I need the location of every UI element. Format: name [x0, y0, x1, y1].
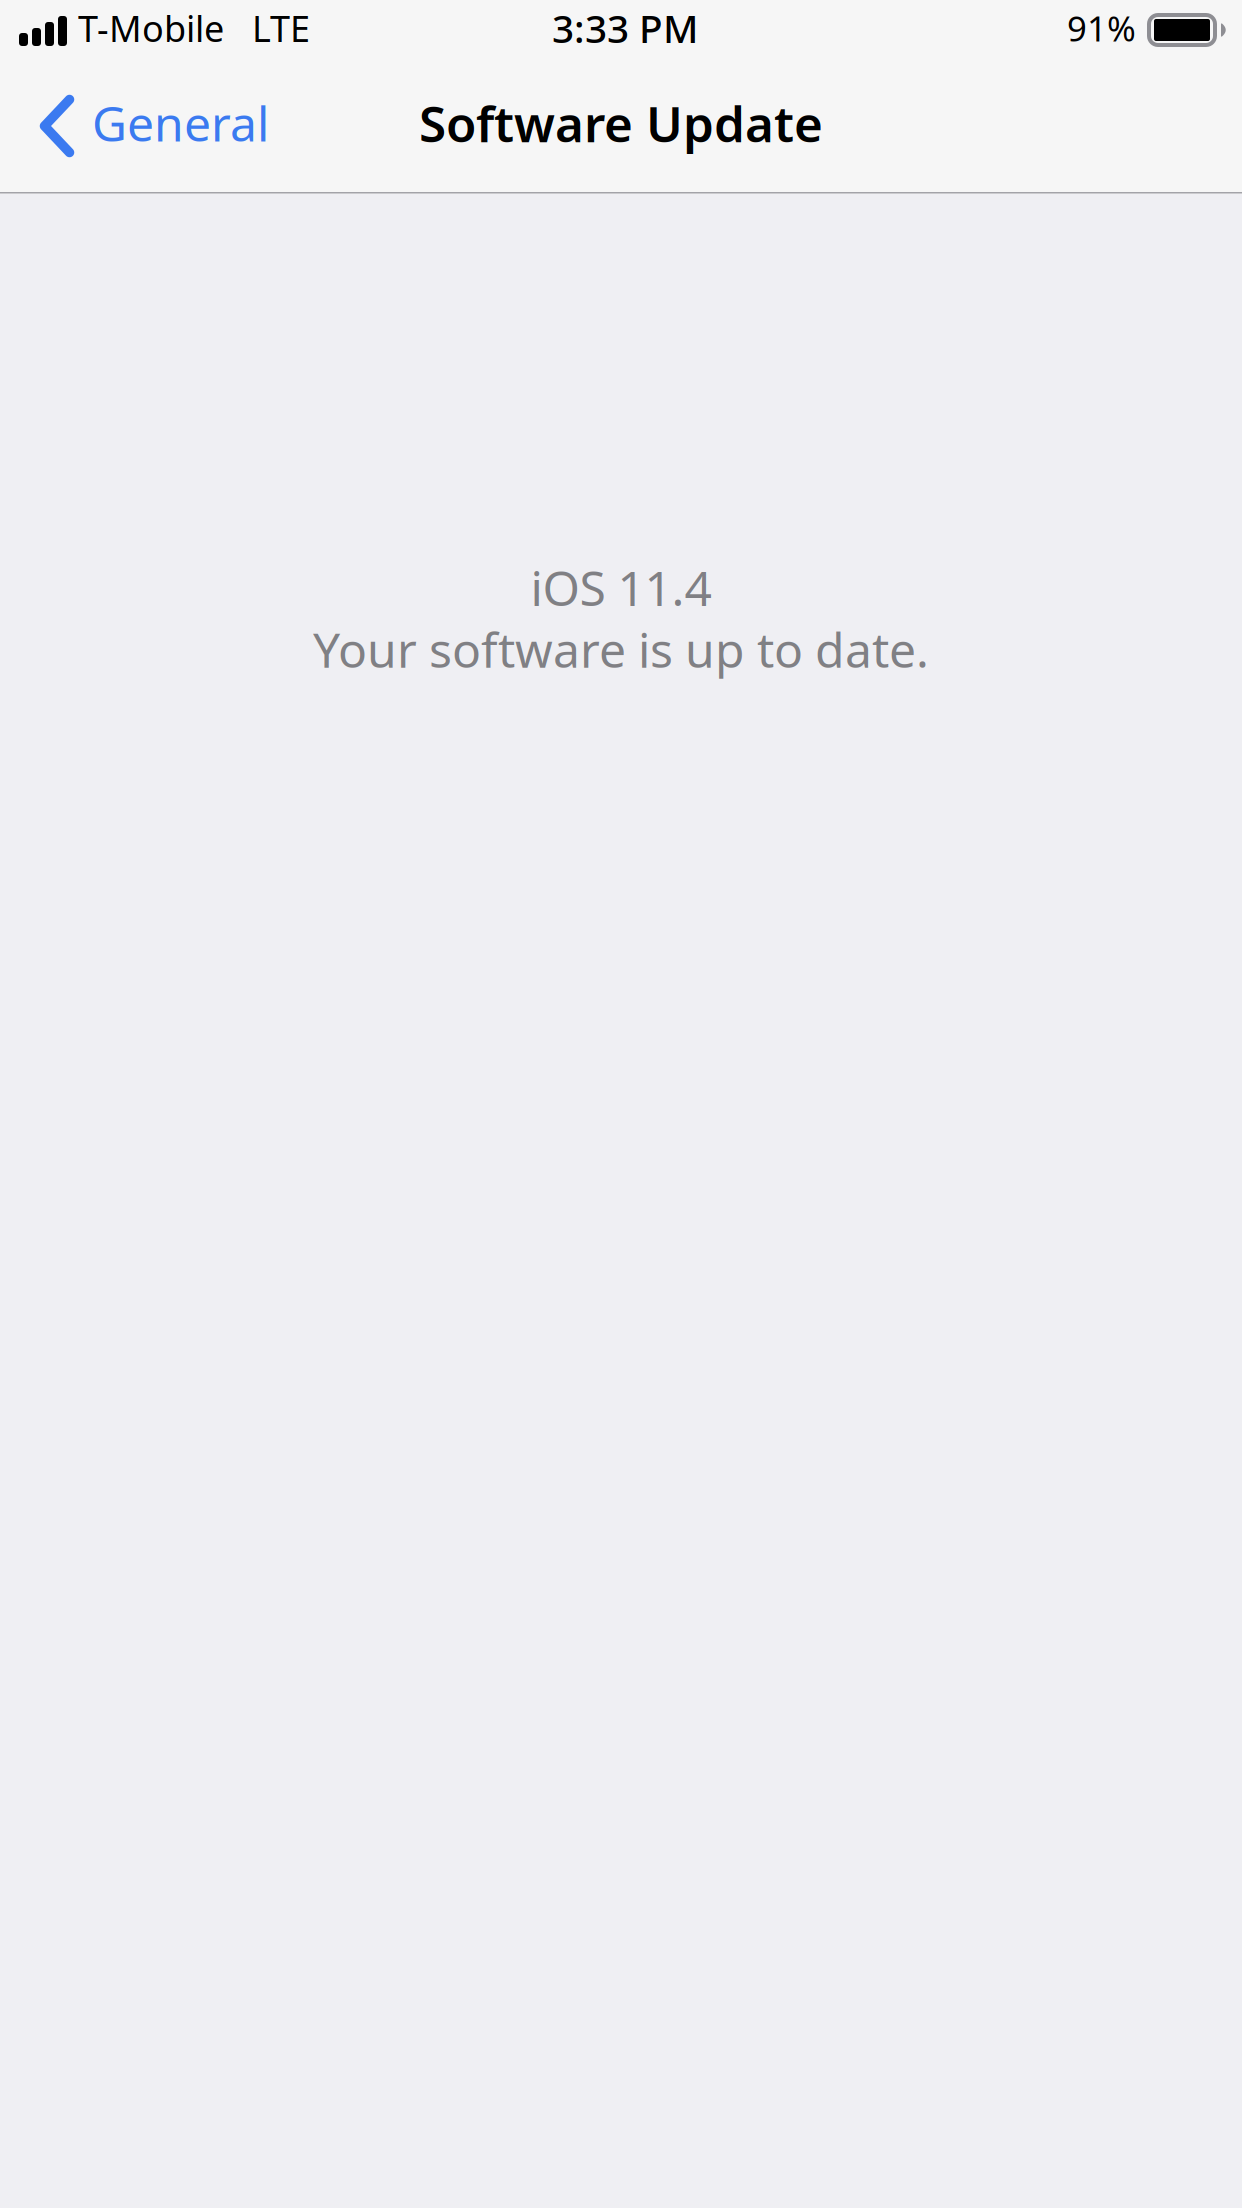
staticText: LTE: [252, 4, 310, 52]
staticText: T-Mobile: [78, 4, 224, 52]
staticText: 3:33 PM: [552, 2, 698, 54]
staticText: 91%: [1067, 5, 1136, 51]
staticText: General: [92, 91, 269, 155]
staticText: Your software is up to date.: [313, 617, 929, 681]
button[interactable]: General: [0, 54, 293, 192]
staticText: iOS 11.4: [530, 555, 711, 619]
staticText: Software Update: [419, 90, 823, 156]
